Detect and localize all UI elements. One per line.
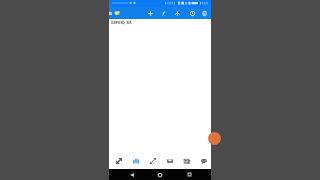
button[interactable]: Account [112,7,122,19]
button[interactable]: Back [126,169,138,180]
button[interactable]: News [178,152,195,169]
button[interactable]: Chat [195,152,212,169]
button[interactable]: Indicators [171,7,184,19]
button[interactable]: Menu [107,7,114,19]
button[interactable]: Charts [127,152,144,169]
button[interactable]: History [161,152,178,169]
button[interactable]: Objects [157,7,170,19]
button[interactable]: Home [154,169,166,180]
button[interactable]: Recents [183,169,195,180]
button[interactable]: Trade [144,152,161,169]
button[interactable]: Timeframe [186,7,199,19]
button[interactable]: Chart settings [198,7,211,19]
staticText: GBPUSD, M5 [111,20,132,25]
button[interactable]: Add object [144,7,157,19]
button[interactable]: Quotes [110,152,127,169]
button[interactable]: New order [208,132,221,145]
